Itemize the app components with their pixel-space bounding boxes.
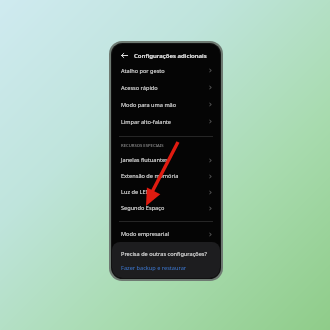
staticText: Modo empresarial <box>121 230 208 238</box>
button[interactable]: Limpar alto-falante <box>112 113 220 130</box>
button[interactable]: Atalho por gesto <box>112 62 220 79</box>
staticText: RECURSOS ESPECIAIS <box>121 143 164 149</box>
button[interactable]: Acesso rápido <box>112 79 220 96</box>
staticText: Modo para uma mão <box>121 101 208 109</box>
button[interactable]: Back <box>119 50 129 60</box>
staticText: Limpar alto-falante <box>121 118 208 126</box>
staticText: Acesso rápido <box>121 84 208 92</box>
staticText: Atalho por gesto <box>121 67 208 75</box>
staticText: Fazer backup e restaurar <box>121 264 187 272</box>
button[interactable]: Fazer backup e restaurar <box>121 264 187 272</box>
staticText: Configurações adicionais <box>134 51 207 59</box>
staticText: Janelas flutuantes <box>121 156 208 164</box>
staticText: Segundo Espaço <box>121 204 208 212</box>
button[interactable]: Modo para uma mão <box>112 96 220 113</box>
staticText: Luz de LED <box>121 188 208 196</box>
button[interactable]: Janelas flutuantes <box>112 152 220 168</box>
button[interactable]: Segundo Espaço <box>112 200 220 216</box>
button[interactable]: Luz de LED <box>112 184 220 200</box>
button[interactable]: Modo empresarial <box>112 226 220 242</box>
staticText: Precisa de outras configurações? <box>121 250 207 258</box>
button[interactable]: Extensão de memória <box>112 168 220 184</box>
staticText: Extensão de memória <box>121 172 208 180</box>
